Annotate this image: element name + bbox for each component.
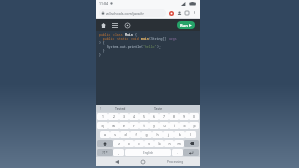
button[interactable]: y bbox=[149, 122, 159, 129]
button[interactable]: w3schools.com/java/tr bbox=[99, 9, 166, 17]
staticText: . bbox=[177, 150, 178, 155]
staticText: void bbox=[131, 37, 141, 41]
button[interactable]: d bbox=[120, 131, 130, 138]
button[interactable]: h bbox=[152, 131, 163, 138]
button[interactable]: k bbox=[174, 131, 185, 138]
staticText: English bbox=[143, 151, 154, 155]
button[interactable]: o bbox=[179, 122, 189, 129]
staticText: c bbox=[138, 141, 140, 146]
staticText: h bbox=[156, 132, 159, 137]
staticText: m bbox=[177, 141, 181, 146]
button[interactable]: i bbox=[169, 122, 179, 129]
staticText: { bbox=[135, 33, 137, 37]
button[interactable]: ! bbox=[100, 106, 101, 111]
button[interactable]: b bbox=[154, 140, 164, 147]
button[interactable]: Tested bbox=[101, 106, 139, 111]
button[interactable]: Profile bbox=[176, 10, 182, 16]
staticText: 0 bbox=[193, 114, 195, 119]
button[interactable]: 7 bbox=[159, 113, 169, 120]
staticText: o bbox=[183, 123, 186, 128]
button[interactable]: m bbox=[174, 140, 184, 147]
staticText: } bbox=[99, 53, 101, 57]
staticText: Processing bbox=[167, 160, 184, 164]
button[interactable]: 4 bbox=[129, 113, 139, 120]
button[interactable]: Home bbox=[99, 21, 107, 29]
button[interactable]: e bbox=[119, 122, 129, 129]
button[interactable]: s bbox=[110, 131, 120, 138]
button[interactable]: More options bbox=[192, 10, 197, 15]
button[interactable]: r bbox=[129, 122, 139, 129]
staticText: args bbox=[169, 37, 177, 41]
staticText: static bbox=[117, 37, 131, 41]
button[interactable]: 5 bbox=[139, 113, 149, 120]
staticText: t bbox=[143, 123, 145, 128]
staticText: Run bbox=[180, 23, 188, 28]
button[interactable]: . bbox=[172, 149, 183, 156]
button[interactable]: g bbox=[141, 131, 152, 138]
button[interactable]: Settings bbox=[123, 21, 131, 29]
button[interactable]: Enter bbox=[183, 149, 199, 156]
button[interactable]: Tabs bbox=[184, 10, 190, 16]
button[interactable]: 6 bbox=[149, 113, 159, 120]
staticText: Main bbox=[125, 33, 135, 37]
staticText: f bbox=[135, 132, 137, 137]
staticText: b bbox=[158, 141, 161, 146]
button[interactable]: 2 bbox=[108, 113, 119, 120]
staticText: q bbox=[101, 123, 104, 128]
staticText: (String[] bbox=[149, 37, 169, 41]
button[interactable]: a bbox=[100, 131, 110, 138]
button[interactable]: f bbox=[130, 131, 141, 138]
staticText: 4 bbox=[133, 114, 135, 119]
button[interactable]: u bbox=[159, 122, 169, 129]
staticText: u bbox=[163, 123, 166, 128]
button[interactable]: 9 bbox=[179, 113, 189, 120]
staticText: public bbox=[99, 37, 117, 41]
staticText: 7 bbox=[163, 114, 165, 119]
button[interactable]: Run bbox=[177, 21, 195, 29]
button[interactable]: p bbox=[189, 122, 199, 129]
button[interactable]: Menu bbox=[111, 21, 119, 29]
button[interactable]: v bbox=[144, 140, 154, 147]
button[interactable]: 0 bbox=[189, 113, 199, 120]
staticText: j bbox=[168, 132, 169, 137]
staticText: 8 bbox=[173, 114, 175, 119]
button[interactable]: Symbols bbox=[97, 149, 113, 156]
staticText: 9 bbox=[183, 114, 185, 119]
button[interactable]: 3 bbox=[119, 113, 129, 120]
staticText: l bbox=[190, 132, 191, 137]
button[interactable]: z bbox=[113, 140, 124, 147]
button[interactable]: c bbox=[134, 140, 144, 147]
button[interactable]: Back bbox=[111, 157, 123, 166]
staticText: s bbox=[114, 132, 116, 137]
button[interactable]: l bbox=[185, 131, 196, 138]
staticText: ) { bbox=[99, 41, 105, 45]
staticText: } bbox=[99, 49, 105, 53]
button[interactable]: j bbox=[163, 131, 174, 138]
staticText: v bbox=[148, 141, 150, 146]
staticText: a bbox=[104, 132, 106, 137]
staticText: w3schools.com/java/tr bbox=[106, 11, 145, 16]
staticText: 5 bbox=[143, 114, 145, 119]
button[interactable]: Recents bbox=[164, 157, 186, 166]
button[interactable]: Shift bbox=[97, 140, 113, 147]
button[interactable]: t bbox=[139, 122, 149, 129]
button[interactable]: n bbox=[164, 140, 174, 147]
staticText: Taste bbox=[154, 106, 163, 111]
button[interactable]: , bbox=[113, 149, 124, 156]
button[interactable]: Home bbox=[137, 157, 149, 166]
staticText: 11:04 bbox=[99, 1, 108, 6]
button[interactable]: w bbox=[108, 122, 119, 129]
button[interactable]: x bbox=[124, 140, 134, 147]
staticText: i bbox=[174, 123, 175, 128]
staticText: ?1* bbox=[102, 150, 108, 155]
button[interactable]: q bbox=[97, 122, 108, 129]
staticText: x bbox=[128, 141, 130, 146]
button[interactable]: Space bbox=[125, 149, 171, 156]
button[interactable]: Taste bbox=[139, 106, 177, 111]
button[interactable]: Extension bbox=[168, 10, 174, 16]
button[interactable]: 1 bbox=[97, 113, 108, 120]
button[interactable]: 8 bbox=[169, 113, 179, 120]
staticText: g bbox=[145, 132, 148, 137]
staticText: 6 bbox=[153, 114, 155, 119]
button[interactable]: Backspace bbox=[184, 140, 199, 147]
